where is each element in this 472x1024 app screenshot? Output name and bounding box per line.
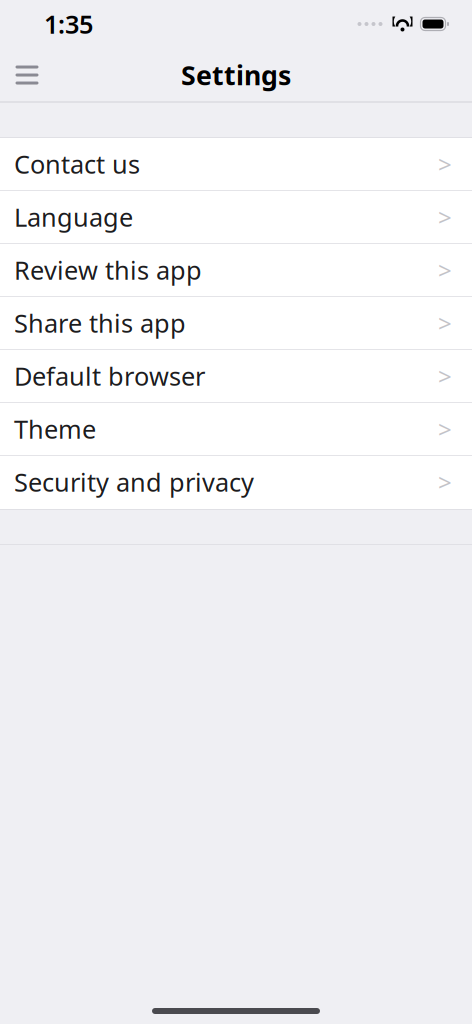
staticText: Security and privacy [14,465,254,499]
staticText: > [438,254,452,286]
button[interactable]: Review this app [0,244,472,297]
staticText: Default browser [14,359,205,393]
button[interactable]: Menu [0,48,54,102]
staticText: Review this app [14,253,202,287]
staticText: 1:35 [44,7,93,41]
staticText: > [438,466,452,498]
staticText: Share this app [14,306,186,340]
staticText: > [438,148,452,180]
staticText: > [438,413,452,445]
button[interactable]: Security and privacy [0,456,472,509]
staticText: > [438,360,452,392]
staticText: > [438,201,452,233]
staticText: Theme [14,412,96,446]
button[interactable]: Share this app [0,297,472,350]
button[interactable]: Default browser [0,350,472,403]
button[interactable]: Contact us [0,138,472,191]
staticText: Contact us [14,147,140,181]
staticText: Language [14,200,133,234]
staticText: Settings [181,57,291,93]
staticText: > [438,307,452,339]
button[interactable]: Language [0,191,472,244]
button[interactable]: Theme [0,403,472,456]
